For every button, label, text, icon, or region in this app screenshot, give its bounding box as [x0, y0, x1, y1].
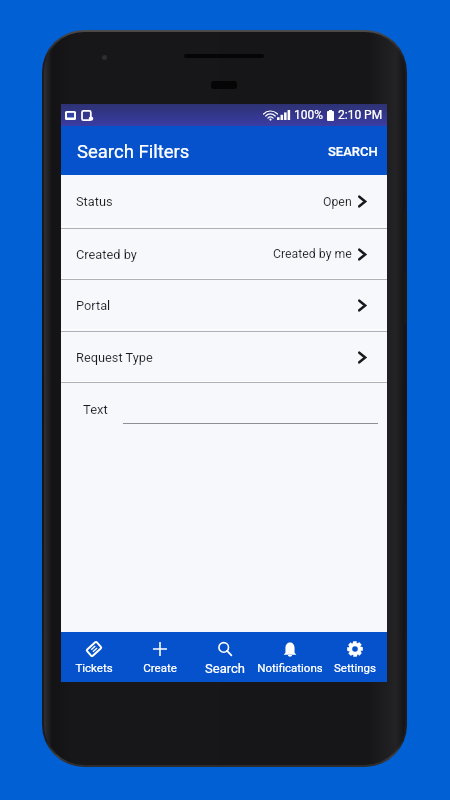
staticText: Created by	[76, 247, 137, 262]
staticText: Search	[205, 661, 245, 676]
button[interactable]: Create	[127, 632, 192, 682]
staticText: Search Filters	[77, 141, 190, 163]
staticText: Portal	[76, 298, 111, 313]
staticText: Created by me	[273, 247, 352, 261]
staticText: Create	[143, 661, 177, 674]
button[interactable]: Request Type	[61, 332, 387, 383]
button[interactable]: Tickets	[61, 632, 127, 682]
button[interactable]: Settings	[322, 632, 387, 682]
button[interactable]: Status	[61, 175, 387, 228]
staticText: Notifications	[257, 661, 322, 674]
staticText: 2:10 PM	[338, 108, 383, 122]
staticText: Settings	[334, 661, 376, 674]
staticText: Tickets	[75, 661, 113, 674]
staticText: 100%	[294, 108, 324, 122]
button[interactable]: Portal	[61, 280, 387, 331]
staticText: Status	[76, 194, 113, 209]
button[interactable]: Created by	[61, 229, 387, 279]
button[interactable]: Search	[192, 632, 257, 682]
staticText: SEARCH	[328, 144, 378, 159]
staticText: Text	[83, 402, 108, 417]
button[interactable]: Notifications	[257, 632, 322, 682]
staticText: Request Type	[76, 350, 153, 365]
button[interactable]: SEARCH	[317, 129, 387, 172]
staticText: Open	[323, 195, 352, 209]
